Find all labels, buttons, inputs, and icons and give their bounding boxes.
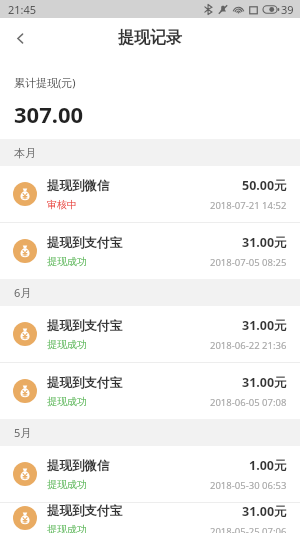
staticText: 5月 [14, 425, 32, 440]
staticText: 提现到支付宝 [47, 235, 122, 251]
staticText: 31.00元 [242, 503, 287, 520]
button[interactable]: 提现到微信 [0, 166, 300, 222]
staticText: 累计提现(元) [14, 75, 76, 90]
staticText: 1.00元 [249, 457, 287, 474]
staticText: 50.00元 [242, 177, 287, 194]
staticText: 提现到微信 [47, 458, 110, 474]
staticText: 39 [281, 2, 294, 17]
staticText: 2018-05-30 06:53 [210, 479, 287, 492]
staticText: 307.00 [14, 99, 84, 129]
staticText: 提现成功 [47, 395, 87, 408]
staticText: 6月 [14, 285, 32, 300]
staticText: 31.00元 [242, 317, 287, 334]
staticText: 提现记录 [118, 28, 182, 48]
staticText: 2018-07-21 14:52 [210, 199, 287, 212]
staticText: 提现成功 [47, 338, 87, 351]
staticText: 本月 [14, 146, 36, 160]
staticText: 2018-05-25 07:06 [210, 525, 287, 533]
staticText: 提现到支付宝 [47, 375, 122, 391]
staticText: 提现到微信 [47, 178, 110, 194]
button[interactable]: Back [0, 18, 40, 58]
staticText: 2018-06-05 07:08 [210, 396, 287, 409]
button[interactable]: 提现到支付宝 [0, 503, 300, 533]
staticText: 31.00元 [242, 234, 287, 251]
button[interactable]: 提现到支付宝 [0, 363, 300, 419]
staticText: 31.00元 [242, 374, 287, 391]
staticText: 21:45 [8, 2, 37, 17]
button[interactable]: 提现到微信 [0, 446, 300, 502]
staticText: 提现成功 [47, 478, 87, 491]
staticText: 提现成功 [47, 255, 87, 268]
staticText: 提现到支付宝 [47, 503, 122, 519]
button[interactable]: 提现到支付宝 [0, 306, 300, 362]
staticText: 2018-06-22 21:36 [210, 339, 287, 352]
staticText: 2018-07-05 08:25 [210, 256, 287, 269]
button[interactable]: 提现到支付宝 [0, 223, 300, 279]
staticText: 提现到支付宝 [47, 318, 122, 334]
staticText: 提现成功 [47, 523, 87, 533]
staticText: 审核中 [47, 198, 77, 211]
